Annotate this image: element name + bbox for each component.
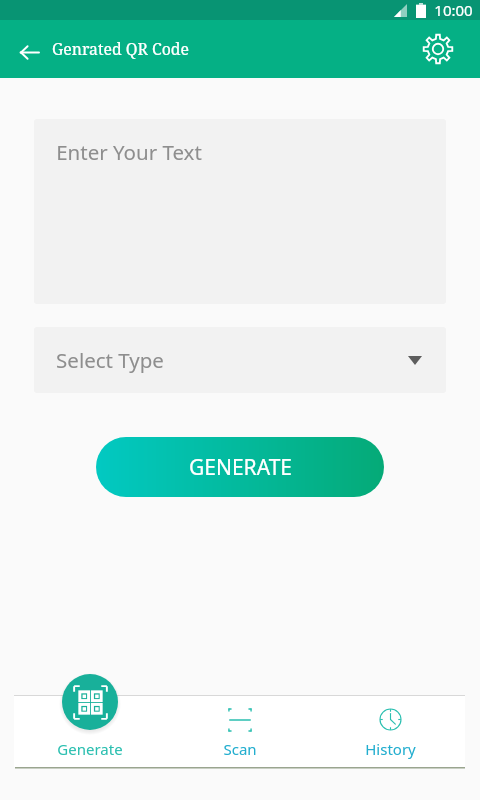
button[interactable]: Generate — [40, 671, 140, 759]
staticText: Enter Your Text — [56, 138, 202, 166]
staticText: GENERATE — [189, 453, 292, 482]
staticText: Scan — [223, 739, 257, 759]
button[interactable]: History — [330, 698, 450, 767]
button[interactable]: Select Type — [34, 327, 446, 393]
button[interactable]: Back — [9, 29, 49, 69]
staticText: Genrated QR Code — [52, 38, 189, 60]
staticText: History — [365, 739, 416, 759]
staticText: 10:00 — [434, 0, 473, 20]
button[interactable]: Enter Your Text — [34, 119, 446, 304]
staticText: Select Type — [56, 346, 164, 374]
button[interactable]: Settings — [420, 31, 456, 67]
staticText: Generate — [57, 739, 123, 759]
button[interactable]: Scan — [180, 698, 300, 767]
button[interactable]: GENERATE — [96, 437, 384, 497]
